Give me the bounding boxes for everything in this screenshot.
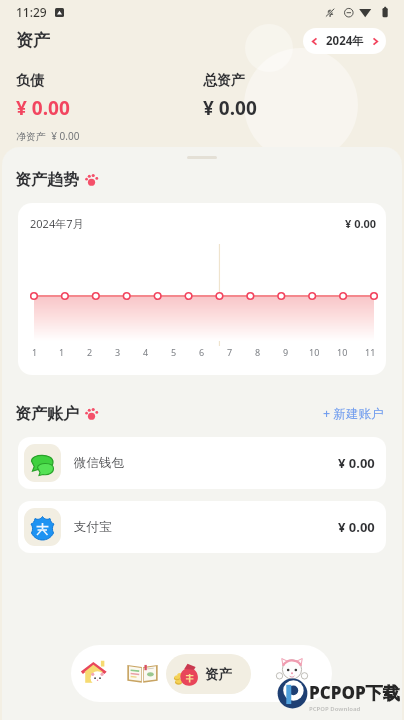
- staticText: 9: [283, 346, 289, 358]
- staticText: 10: [337, 346, 348, 358]
- staticText: 负债: [16, 72, 44, 90]
- staticText: 微信钱包: [74, 455, 124, 471]
- staticText: PCPOP下载: [309, 681, 400, 704]
- staticText: ¥ 0.00: [203, 95, 257, 121]
- button[interactable]: + 新建账户: [321, 401, 386, 426]
- staticText: 11: [365, 346, 376, 358]
- staticText: 支付宝: [74, 519, 112, 535]
- staticText: PCPOP Download: [309, 705, 361, 713]
- staticText: 净资产 ¥ 0.00: [16, 129, 80, 143]
- staticText: 10: [309, 346, 320, 358]
- button[interactable]: 首页: [71, 645, 118, 702]
- staticText: ¥ 0.00: [16, 95, 70, 121]
- staticText: ¥ 0.00: [338, 454, 375, 472]
- staticText: 5: [171, 346, 177, 358]
- staticText: 11:29: [16, 4, 47, 20]
- staticText: 4: [143, 346, 149, 358]
- staticText: 2024年: [326, 33, 364, 49]
- button[interactable]: 2024年: [303, 28, 386, 54]
- button[interactable]: 我的: [251, 645, 332, 702]
- staticText: 资产趋势: [15, 170, 79, 190]
- staticText: 资产账户: [15, 404, 79, 424]
- staticText: 资产: [16, 30, 50, 51]
- staticText: 总资产: [203, 72, 245, 90]
- button[interactable]: 支付宝: [18, 501, 386, 553]
- button[interactable]: 账本: [118, 645, 166, 702]
- staticText: 6: [199, 346, 205, 358]
- staticText: 2024年7月: [30, 216, 84, 231]
- staticText: ¥ 0.00: [338, 518, 375, 536]
- staticText: 2: [87, 346, 93, 358]
- button[interactable]: 资产: [166, 654, 251, 694]
- staticText: 3: [115, 346, 121, 358]
- staticText: 资产: [205, 666, 232, 683]
- button[interactable]: 微信钱包: [18, 437, 386, 489]
- staticText: 1: [32, 346, 38, 358]
- staticText: 1: [59, 346, 65, 358]
- staticText: + 新建账户: [323, 405, 384, 422]
- staticText: 7: [227, 346, 233, 358]
- staticText: 8: [255, 346, 261, 358]
- staticText: ¥ 0.00: [345, 216, 377, 231]
